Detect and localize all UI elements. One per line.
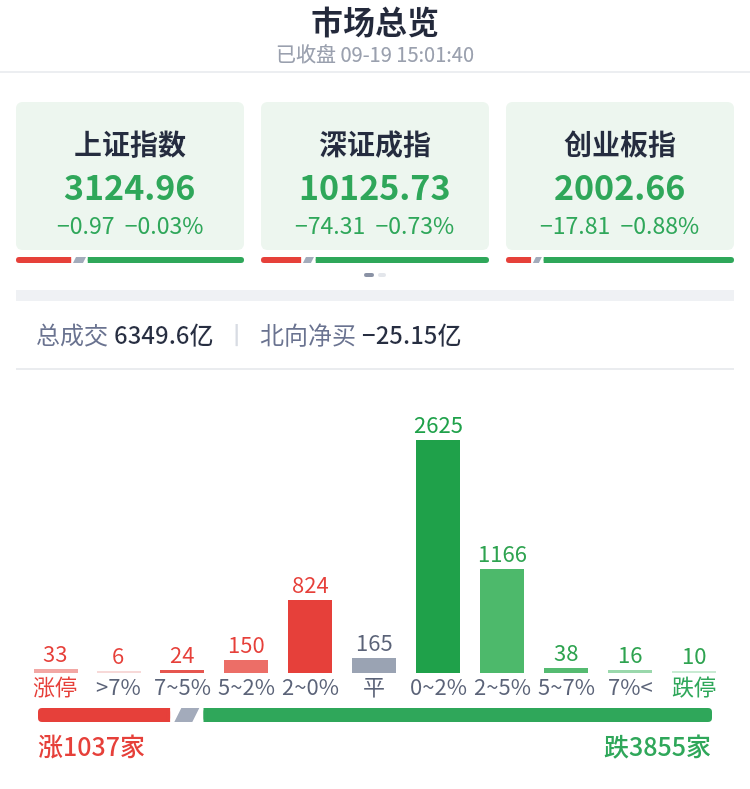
staticText: 7%< — [608, 673, 653, 701]
staticText: 2~5% — [474, 673, 531, 701]
button[interactable]: 总成交 — [36, 301, 750, 368]
button[interactable]: 165 — [342, 632, 406, 701]
staticText: 涨1037家 — [38, 729, 146, 763]
staticText: 3124.96 — [64, 166, 196, 208]
staticText: 10125.73 — [299, 166, 451, 208]
staticText: −74.31 −0.73% — [295, 213, 455, 239]
staticText: 创业板指 — [564, 128, 677, 162]
staticText: 0~2% — [410, 673, 467, 701]
staticText: 38 — [554, 642, 579, 666]
staticText: 10 — [682, 645, 707, 669]
button[interactable]: 38 — [534, 642, 598, 701]
staticText: 上证指数 — [74, 128, 187, 162]
button[interactable]: 150 — [214, 634, 278, 701]
staticText: 2~0% — [282, 673, 339, 701]
staticText: 跌3855家 — [604, 729, 712, 763]
staticText: 33 — [43, 643, 68, 667]
staticText: 5~7% — [538, 673, 595, 701]
staticText: 5~2% — [218, 673, 275, 701]
staticText: 平 — [363, 673, 386, 701]
staticText: 总成交 — [36, 320, 114, 350]
staticText: 150 — [228, 634, 265, 658]
staticText: 16 — [618, 644, 643, 668]
staticText: −0.97 −0.03% — [57, 213, 204, 239]
staticText: 7~5% — [154, 673, 211, 701]
button[interactable]: 6 — [87, 645, 150, 701]
staticText: 1166 — [478, 543, 527, 567]
staticText: 市场总览 — [311, 5, 440, 41]
staticText: 6349.6亿 — [114, 320, 214, 350]
button[interactable]: 24 — [150, 644, 214, 701]
staticText: 丨 — [214, 320, 260, 350]
staticText: 已收盘 09-19 15:01:40 — [276, 41, 475, 67]
staticText: 824 — [292, 574, 329, 598]
staticText: −17.81 −0.88% — [540, 213, 700, 239]
button[interactable]: 2625 — [406, 414, 470, 701]
button[interactable]: 824 — [278, 574, 342, 701]
button[interactable]: 深证成指 — [261, 102, 489, 250]
staticText: >7% — [96, 673, 141, 701]
staticText: 24 — [170, 644, 195, 668]
button[interactable]: 10 — [662, 645, 726, 701]
staticText: 涨停 — [33, 673, 78, 701]
staticText: 深证成指 — [319, 128, 432, 162]
button[interactable]: 上证指数 — [16, 102, 244, 250]
staticText: 2002.66 — [554, 166, 686, 208]
staticText: 6 — [112, 645, 125, 669]
button[interactable]: 1166 — [470, 543, 534, 701]
button[interactable]: 创业板指 — [506, 102, 734, 250]
button[interactable]: 33 — [24, 643, 87, 701]
staticText: 北向净买 — [260, 320, 362, 350]
staticText: 2625 — [414, 414, 463, 438]
button[interactable]: 16 — [598, 644, 662, 701]
staticText: −25.15亿 — [362, 320, 462, 350]
staticText: 跌停 — [672, 673, 717, 701]
staticText: 165 — [356, 632, 393, 656]
